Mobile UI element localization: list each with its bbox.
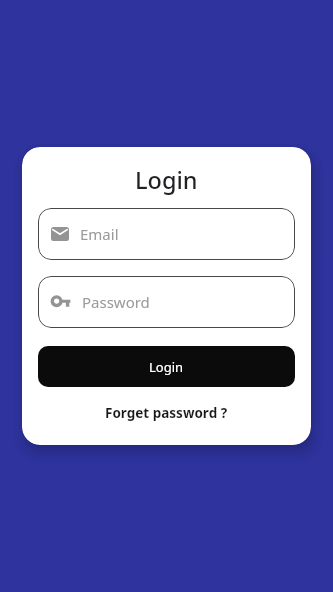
staticText: Login (149, 358, 184, 376)
button[interactable]: Email (38, 208, 295, 260)
button[interactable]: Password (38, 276, 295, 328)
staticText: Login (135, 164, 198, 196)
button[interactable]: Login (38, 346, 295, 387)
staticText: Forget password ? (105, 404, 228, 422)
button[interactable]: Forget password ? (101, 400, 232, 426)
staticText: Email (80, 224, 119, 244)
staticText: Password (82, 292, 150, 312)
